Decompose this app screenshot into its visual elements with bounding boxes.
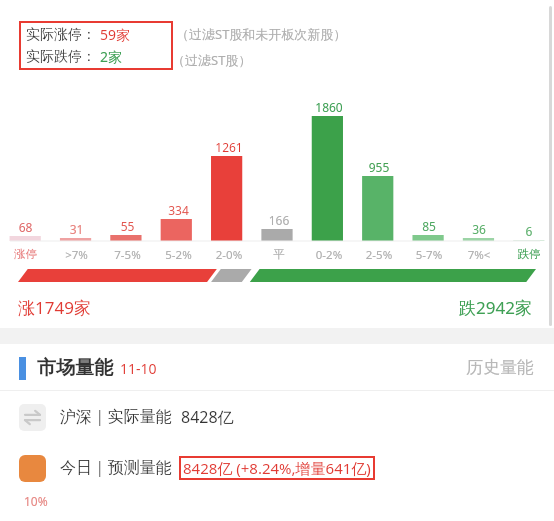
button[interactable]: 1860 bbox=[304, 84, 354, 264]
staticText: 实际涨停： bbox=[26, 26, 96, 44]
button[interactable]: 36 bbox=[454, 84, 504, 264]
staticText: 2家 bbox=[100, 47, 123, 66]
staticText: 31 bbox=[51, 221, 102, 237]
staticText: 10% bbox=[24, 493, 48, 509]
staticText: 今日｜预测量能 bbox=[60, 458, 172, 478]
button[interactable]: 85 bbox=[404, 84, 454, 264]
staticText: 沪深｜实际量能 bbox=[60, 407, 172, 427]
button[interactable]: 31 bbox=[51, 84, 102, 264]
staticText: 59家 bbox=[100, 25, 131, 44]
staticText: 涨1749家 bbox=[18, 296, 91, 319]
staticText: 6 bbox=[504, 223, 554, 239]
staticText: 55 bbox=[102, 218, 153, 234]
button[interactable]: 166 bbox=[254, 84, 304, 264]
staticText: （过滤ST股和未开板次新股） bbox=[176, 25, 347, 43]
button[interactable]: 955 bbox=[354, 84, 404, 264]
button[interactable]: 6 bbox=[504, 84, 554, 264]
staticText: 1261 bbox=[204, 139, 254, 155]
staticText: 2-5% bbox=[354, 247, 404, 263]
staticText: 7%< bbox=[454, 247, 504, 263]
staticText: 68 bbox=[0, 219, 51, 235]
button[interactable]: 实际涨停： bbox=[19, 21, 173, 70]
staticText: >7% bbox=[51, 247, 102, 263]
button[interactable]: 涨1749家 bbox=[0, 286, 554, 328]
button[interactable]: 334 bbox=[153, 84, 204, 264]
staticText: 2-0% bbox=[204, 247, 254, 263]
staticText: 实际跌停： bbox=[26, 48, 96, 66]
staticText: 5-2% bbox=[153, 247, 204, 263]
button[interactable]: 今日｜预测量能 bbox=[0, 443, 554, 493]
staticText: 历史量能 bbox=[466, 357, 534, 378]
staticText: 166 bbox=[254, 212, 304, 228]
button[interactable]: 68 bbox=[0, 84, 51, 264]
staticText: 334 bbox=[153, 202, 204, 218]
staticText: 跌2942家 bbox=[459, 296, 532, 319]
staticText: 955 bbox=[354, 159, 404, 175]
other: 交换 bbox=[19, 404, 46, 431]
staticText: 8428亿 (+8.24%,增量641亿) bbox=[183, 458, 371, 478]
staticText: 市场量能 bbox=[37, 356, 113, 380]
button[interactable] bbox=[0, 264, 554, 286]
staticText: （过滤ST股） bbox=[172, 51, 252, 69]
staticText: 5-7% bbox=[404, 247, 454, 263]
button[interactable]: 交换 bbox=[0, 391, 554, 443]
staticText: 7-5% bbox=[102, 247, 153, 263]
staticText: 平 bbox=[254, 247, 304, 261]
button[interactable]: 历史量能 bbox=[466, 357, 534, 378]
button[interactable]: 1261 bbox=[204, 84, 254, 264]
staticText: 1860 bbox=[304, 99, 354, 115]
staticText: 8428亿 bbox=[181, 406, 234, 428]
staticText: 0-2% bbox=[304, 247, 354, 263]
button[interactable]: 市场量能 bbox=[19, 356, 157, 380]
staticText: 跌停 bbox=[504, 247, 554, 261]
staticText: 85 bbox=[404, 218, 454, 234]
staticText: 11-10 bbox=[120, 359, 157, 378]
staticText: 涨停 bbox=[0, 247, 51, 261]
button[interactable]: 55 bbox=[102, 84, 153, 264]
staticText: 36 bbox=[454, 221, 504, 237]
